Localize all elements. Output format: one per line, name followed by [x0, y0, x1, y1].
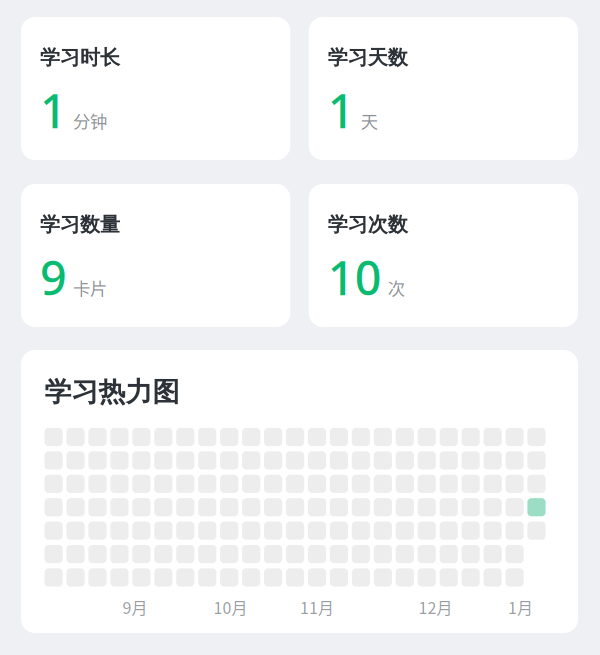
- staticText: 分钟: [73, 108, 107, 133]
- staticText: 学习次数: [328, 212, 408, 237]
- button[interactable]: 学习天数: [309, 17, 578, 160]
- staticText: 次: [388, 275, 405, 300]
- staticText: 9: [40, 245, 67, 309]
- staticText: 学习数量: [40, 212, 120, 237]
- staticText: 11月: [300, 595, 334, 619]
- staticText: 1月: [508, 595, 533, 619]
- staticText: 12月: [419, 595, 453, 619]
- staticText: 9月: [122, 595, 147, 619]
- staticText: 天: [361, 108, 378, 133]
- staticText: 10: [328, 245, 382, 309]
- staticText: 学习时长: [40, 45, 120, 70]
- button[interactable]: 学习时长: [21, 17, 290, 160]
- staticText: 10月: [214, 595, 248, 619]
- staticText: 卡片: [73, 275, 107, 300]
- button[interactable]: 学习次数: [309, 184, 578, 327]
- staticText: 学习天数: [328, 45, 408, 70]
- staticText: 1: [40, 78, 67, 142]
- staticText: 1: [328, 78, 355, 142]
- staticText: 学习热力图: [44, 375, 179, 409]
- button[interactable]: 学习数量: [21, 184, 290, 327]
